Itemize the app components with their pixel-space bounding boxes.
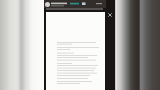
button[interactable]: Account: [45, 2, 50, 7]
button[interactable]: Close: [106, 11, 114, 19]
